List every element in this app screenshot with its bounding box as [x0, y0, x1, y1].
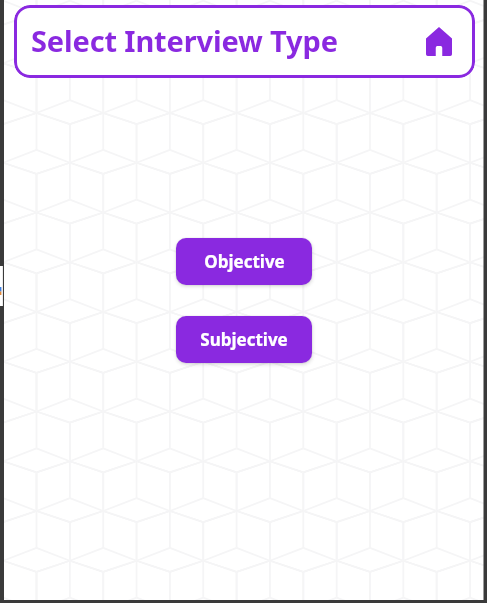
staticText: Select Interview Type [31, 21, 338, 60]
staticText: Objective [204, 250, 285, 273]
button[interactable]: Objective [176, 238, 312, 285]
button[interactable]: Home [419, 22, 459, 62]
button[interactable]: Subjective [176, 316, 312, 363]
staticText: Subjective [200, 328, 288, 351]
button[interactable]: Select Interview Type [14, 5, 475, 78]
